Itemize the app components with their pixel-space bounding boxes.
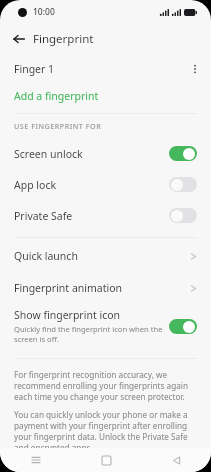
staticText: Fingerprint animation (14, 281, 123, 295)
button[interactable]: Quick launch (0, 240, 211, 272)
button[interactable]: Back (141, 448, 211, 472)
staticText: You can quickly unlock your phone or mak… (14, 409, 197, 453)
staticText: Finger 1 (14, 62, 55, 76)
button[interactable]: Recent apps (0, 448, 71, 472)
button[interactable]: On (169, 319, 197, 334)
staticText: Fingerprint (33, 31, 94, 47)
button[interactable]: Show fingerprint icon (0, 304, 211, 348)
staticText: Quick launch (14, 249, 78, 263)
staticText: USE FINGERPRINT FOR (14, 121, 102, 131)
button[interactable]: Private Safe (0, 200, 211, 231)
button[interactable]: Screen unlock (0, 138, 211, 169)
button[interactable]: Add a fingerprint (0, 84, 211, 108)
staticText: Screen unlock (14, 147, 83, 161)
button[interactable]: Off (169, 177, 197, 192)
button[interactable]: Fingerprint animation (0, 272, 211, 304)
staticText: Private Safe (14, 209, 73, 223)
button[interactable]: App lock (0, 169, 211, 200)
staticText: Add a fingerprint (14, 89, 99, 103)
button[interactable]: More options (186, 60, 204, 78)
button[interactable]: Home (71, 448, 141, 472)
button[interactable]: Back (9, 29, 29, 49)
staticText: App lock (14, 178, 57, 192)
button[interactable]: On (169, 146, 197, 161)
button[interactable]: Finger 1 (0, 54, 211, 84)
staticText: 10:00 (33, 6, 55, 18)
staticText: For fingerprint recognition accuracy, we… (14, 369, 197, 402)
staticText: Quickly find the fingerprint icon when t… (14, 324, 174, 344)
button[interactable]: Off (169, 208, 197, 223)
staticText: Show fingerprint icon (14, 308, 121, 322)
